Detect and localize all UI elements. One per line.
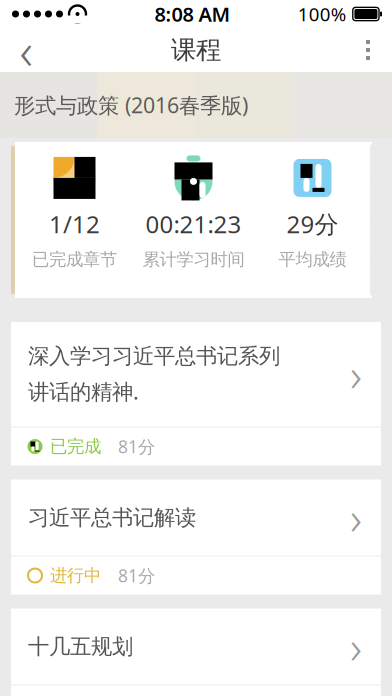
staticText: ‹: [19, 16, 32, 84]
button[interactable]: 十几五规划: [0, 608, 392, 696]
staticText: 十几五规划: [28, 633, 133, 660]
staticText: 讲话的精神.: [28, 377, 139, 405]
staticText: 课程: [171, 34, 221, 65]
button[interactable]: More options: [344, 28, 392, 72]
staticText: ›: [350, 344, 362, 404]
staticText: 进行中: [50, 565, 101, 586]
staticText: 8:08 AM: [154, 1, 230, 27]
staticText: 累计学习时间: [142, 249, 244, 270]
staticText: 形式与政策 (2016春季版): [14, 91, 248, 119]
staticText: 81分: [118, 435, 155, 458]
button[interactable]: 习近平总书记解读: [0, 479, 392, 594]
button[interactable]: Back: [0, 28, 52, 72]
staticText: 习近平总书记解读: [28, 504, 196, 531]
staticText: ›: [350, 487, 362, 548]
staticText: 平均成绩: [278, 249, 346, 270]
staticText: 已完成: [50, 436, 101, 457]
staticText: 29分: [286, 208, 338, 240]
staticText: 100%: [298, 2, 347, 26]
staticText: 1/12: [49, 208, 100, 240]
staticText: 00:21:23: [145, 208, 241, 240]
staticText: 深入学习习近平总书记系列: [28, 343, 280, 369]
staticText: 81分: [118, 564, 155, 587]
staticText: ›: [350, 616, 362, 677]
staticText: 已完成章节: [32, 249, 117, 270]
button[interactable]: 深入学习习近平总书记系列: [0, 322, 392, 465]
